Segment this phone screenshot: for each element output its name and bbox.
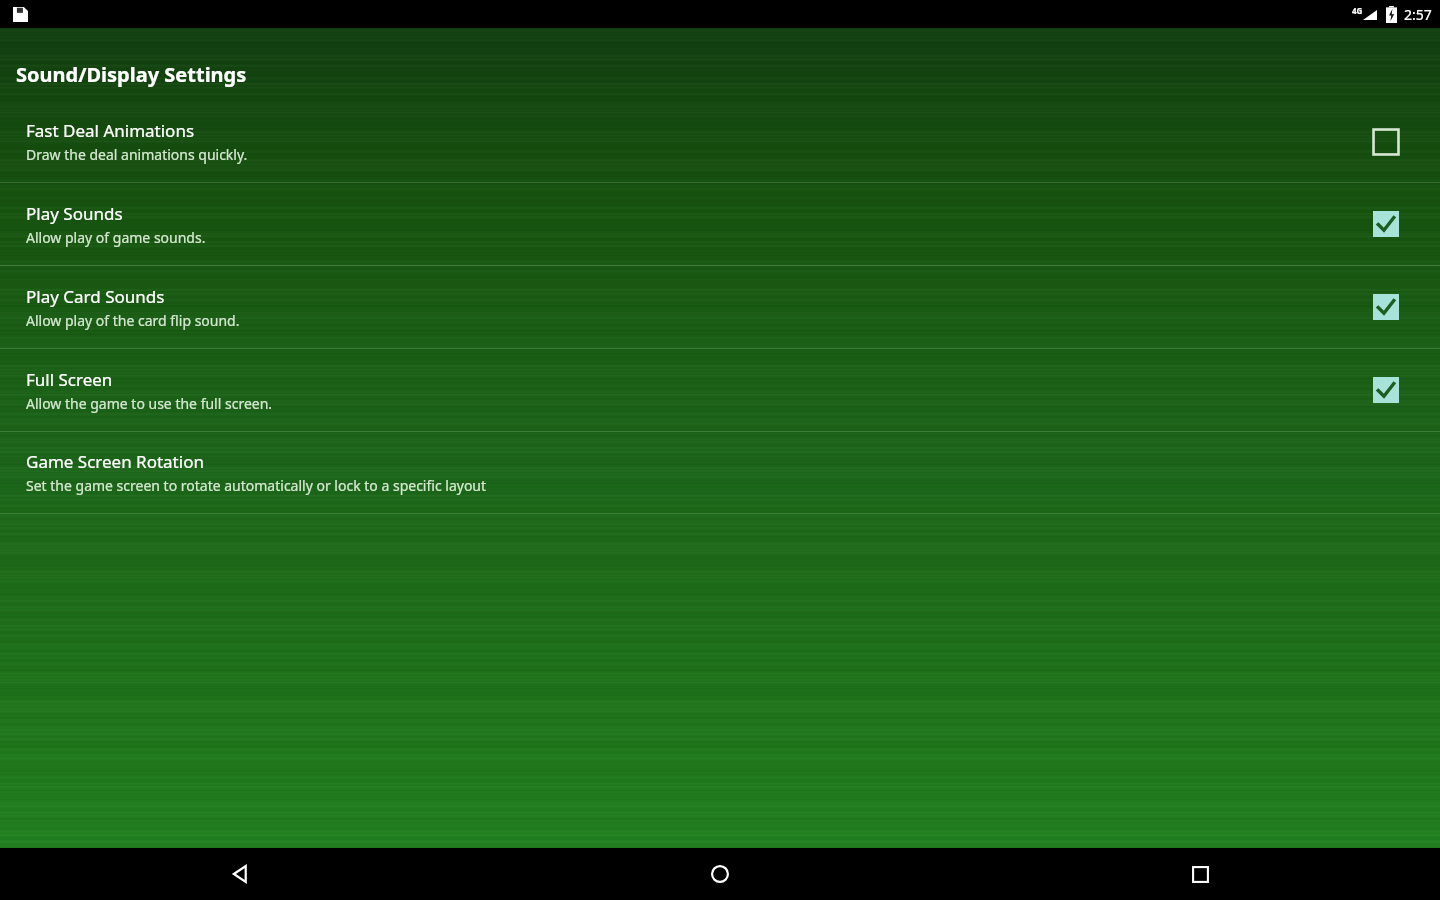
staticText: Sound/Display Settings	[16, 61, 247, 88]
staticText: Game Screen Rotation	[26, 450, 204, 473]
staticText: Allow play of game sounds.	[26, 228, 206, 247]
button[interactable]: Full Screen	[1364, 368, 1408, 412]
button[interactable]: Back	[0, 848, 480, 900]
button[interactable]: Recent apps	[960, 848, 1440, 900]
button[interactable]: Play Sounds	[1364, 202, 1408, 246]
staticText: 2:57	[1404, 5, 1432, 24]
staticText: Full Screen	[26, 368, 113, 391]
staticText: Play Sounds	[26, 202, 123, 225]
button[interactable]: Play Sounds	[0, 183, 1440, 265]
button[interactable]: Fast Deal Animations	[0, 101, 1440, 182]
button[interactable]: Fast Deal Animations	[1364, 120, 1408, 164]
button[interactable]: Play Card Sounds	[1364, 285, 1408, 329]
staticText: Allow play of the card flip sound.	[26, 311, 240, 330]
staticText: Draw the deal animations quickly.	[26, 145, 248, 164]
staticText: Allow the game to use the full screen.	[26, 394, 273, 413]
button[interactable]: Game Screen Rotation	[0, 432, 1440, 513]
staticText: Set the game screen to rotate automatica…	[26, 476, 487, 495]
staticText: 4G	[1352, 5, 1363, 16]
staticText: Fast Deal Animations	[26, 119, 195, 142]
staticText: Play Card Sounds	[26, 285, 165, 308]
button[interactable]: Home	[480, 848, 960, 900]
button[interactable]: Play Card Sounds	[0, 266, 1440, 348]
button[interactable]: Full Screen	[0, 349, 1440, 431]
